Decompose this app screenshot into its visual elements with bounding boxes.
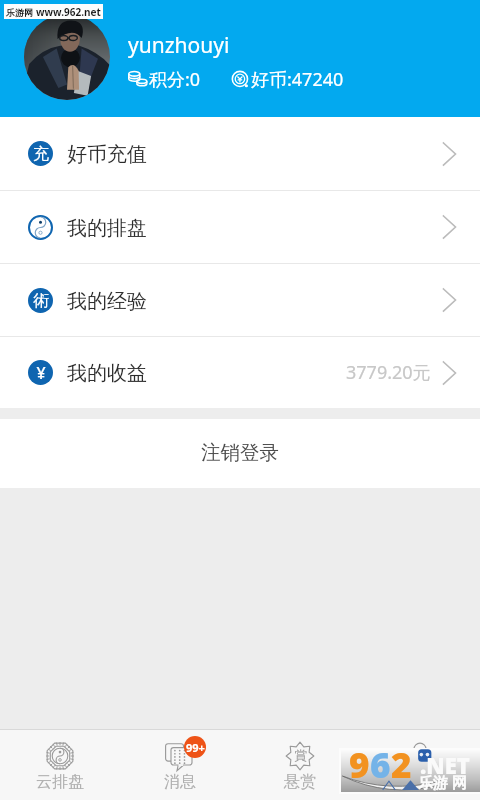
staticText: 我的收益 [67, 361, 147, 386]
staticText: 9 [349, 741, 370, 783]
button[interactable]: 術 [0, 264, 480, 336]
staticText: 3779.20元 [346, 360, 431, 385]
button[interactable]: 賞 [240, 730, 360, 800]
staticText: 悬赏 [284, 772, 316, 792]
button[interactable]: 我的排盘 [0, 191, 480, 263]
button[interactable]: 我的 [360, 730, 480, 800]
staticText: 我的经验 [67, 289, 147, 314]
staticText: 我的 [404, 772, 436, 792]
staticText: 6 [370, 741, 391, 783]
button[interactable]: 注销登录 [0, 419, 480, 488]
staticText: 好币:47240 [251, 67, 344, 92]
staticText: 99+ [186, 740, 205, 755]
staticText: 我的排盘 [67, 216, 147, 241]
staticText: 乐游网 [6, 7, 33, 18]
staticText: 賞 [294, 747, 307, 763]
button[interactable]: ¥ [0, 337, 480, 408]
staticText: 乐游 网 [418, 772, 467, 792]
staticText: 注销登录 [201, 440, 279, 465]
staticText: yunzhouyi [128, 31, 230, 60]
button[interactable]: 云排盘 [0, 730, 120, 800]
button[interactable]: 充 [0, 117, 480, 190]
staticText: 好币充值 [67, 142, 147, 167]
staticText: 2 [391, 741, 412, 783]
button[interactable]: Profile photo [24, 14, 110, 100]
staticText: 術 [33, 291, 49, 311]
staticText: www.962.net [36, 5, 101, 19]
staticText: .NET [420, 750, 470, 780]
staticText: 充 [33, 144, 49, 164]
staticText: ¥ [36, 362, 46, 384]
other: Watermark [4, 4, 103, 19]
button[interactable]: 99+ [120, 730, 240, 800]
staticText: 云排盘 [36, 772, 84, 792]
staticText: 消息 [164, 772, 196, 792]
staticText: 积分:0 [149, 67, 201, 92]
